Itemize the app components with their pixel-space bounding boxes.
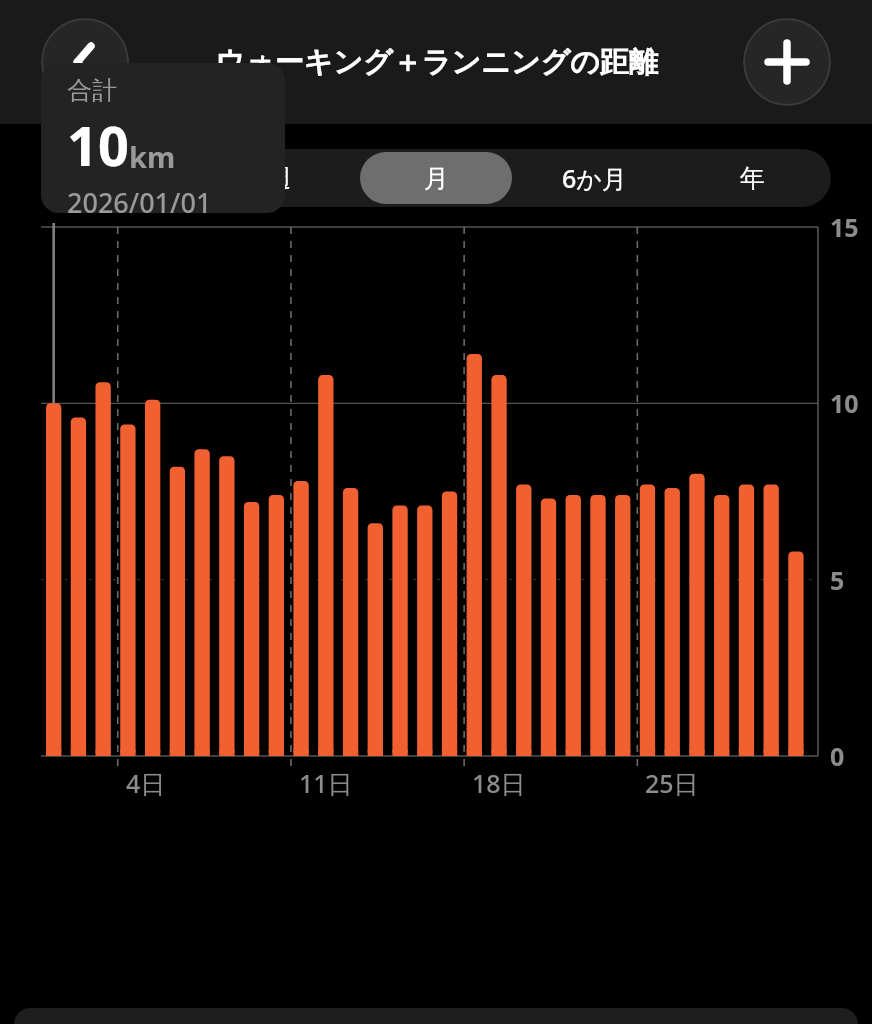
staticText: 日 — [108, 163, 133, 194]
button[interactable]: 日 — [44, 152, 196, 204]
staticText: 11日 — [299, 766, 353, 800]
staticText: 月 — [424, 163, 449, 194]
staticText: 5 — [830, 563, 845, 597]
staticText: 合計 — [67, 75, 117, 106]
staticText: 18日 — [472, 766, 526, 800]
staticText: 2026/01/01 — [67, 184, 212, 213]
button[interactable]: 6か月 — [518, 152, 670, 204]
button[interactable]: 月 — [360, 152, 512, 204]
button[interactable]: 年 — [676, 152, 828, 204]
staticText: 10 — [830, 386, 859, 420]
staticText: 年 — [740, 163, 765, 194]
staticText: 週 — [266, 163, 291, 194]
button[interactable]: 週 — [202, 152, 354, 204]
button[interactable]: Add — [743, 18, 831, 106]
staticText: 10 — [67, 108, 129, 182]
button[interactable]: 合計 — [41, 63, 285, 213]
staticText: ウォーキング＋ランニングの距離 — [215, 44, 658, 81]
staticText: km — [129, 137, 176, 176]
staticText: 15 — [830, 210, 859, 244]
staticText: 6か月 — [562, 161, 627, 195]
staticText: 4日 — [126, 766, 166, 800]
staticText: 25日 — [645, 766, 699, 800]
button[interactable]: Back — [41, 18, 129, 106]
staticText: 0 — [830, 739, 845, 773]
